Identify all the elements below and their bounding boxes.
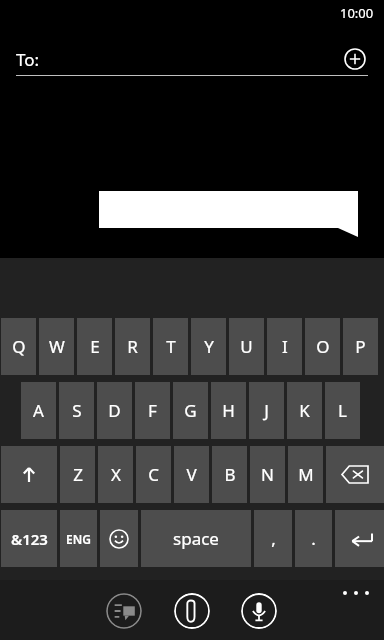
button[interactable]: C <box>136 446 171 503</box>
staticText: C <box>148 463 159 486</box>
button[interactable]: . <box>295 510 332 567</box>
staticText: space <box>173 527 219 550</box>
staticText: N <box>261 463 274 486</box>
button[interactable]: O <box>305 318 340 375</box>
staticText: , <box>271 527 276 550</box>
staticText: O <box>316 335 330 358</box>
staticText: B <box>224 463 236 486</box>
staticText: Y <box>204 335 214 358</box>
button[interactable]: Backspace <box>326 446 384 503</box>
staticText: J <box>264 399 269 422</box>
button[interactable]: Enter <box>335 510 384 567</box>
button[interactable]: F <box>135 382 170 439</box>
button[interactable]: J <box>249 382 284 439</box>
staticText: K <box>299 399 310 422</box>
button[interactable]: &123 <box>1 510 57 567</box>
staticText: ENG <box>66 531 91 547</box>
button[interactable]: T <box>153 318 188 375</box>
staticText: &123 <box>11 529 48 549</box>
staticText: Q <box>12 335 26 358</box>
button[interactable]: Emoji <box>100 510 138 567</box>
button[interactable]: A <box>21 382 56 439</box>
button[interactable]: P <box>343 318 378 375</box>
button[interactable]: M <box>288 446 323 503</box>
staticText: W <box>49 335 65 358</box>
button[interactable]: S <box>59 382 94 439</box>
staticText: E <box>90 335 100 358</box>
button[interactable]: ENG <box>60 510 97 567</box>
button[interactable]: Q <box>1 318 36 375</box>
button[interactable]: I <box>267 318 302 375</box>
staticText: V <box>186 463 197 486</box>
button[interactable]: E <box>77 318 112 375</box>
staticText: D <box>108 399 121 422</box>
staticText: T <box>166 335 176 358</box>
button[interactable]: Shift <box>1 446 57 503</box>
button[interactable]: Quick reply <box>106 593 142 629</box>
staticText: A <box>33 399 44 422</box>
button[interactable]: D <box>97 382 132 439</box>
staticText: G <box>184 399 197 422</box>
button[interactable]: space <box>141 510 251 567</box>
button[interactable]: V <box>174 446 209 503</box>
button[interactable]: Z <box>60 446 95 503</box>
staticText: . <box>311 527 316 550</box>
button[interactable]: N <box>250 446 285 503</box>
staticText: Z <box>73 463 83 486</box>
staticText: F <box>148 399 157 422</box>
staticText: P <box>355 335 366 358</box>
button[interactable]: G <box>173 382 208 439</box>
button[interactable]: Voice input <box>241 593 277 629</box>
button[interactable]: W <box>39 318 74 375</box>
button[interactable]: X <box>98 446 133 503</box>
staticText: I <box>282 335 288 358</box>
staticText: L <box>338 399 347 422</box>
button[interactable]: Add recipient <box>340 44 370 74</box>
button[interactable]: L <box>325 382 360 439</box>
staticText: S <box>72 399 82 422</box>
button[interactable] <box>99 191 358 237</box>
button[interactable]: R <box>115 318 150 375</box>
button[interactable]: Y <box>191 318 226 375</box>
staticText: X <box>111 463 121 486</box>
button[interactable]: Attach <box>174 593 210 629</box>
staticText: To: <box>16 48 40 71</box>
staticText: U <box>240 335 253 358</box>
button[interactable]: , <box>254 510 292 567</box>
staticText: R <box>127 335 138 358</box>
button[interactable]: B <box>212 446 247 503</box>
staticText: 10:00 <box>340 4 374 22</box>
button[interactable]: K <box>287 382 322 439</box>
staticText: M <box>298 463 314 486</box>
staticText: H <box>222 399 235 422</box>
button[interactable]: U <box>229 318 264 375</box>
button[interactable]: H <box>211 382 246 439</box>
button[interactable]: More options <box>332 580 380 606</box>
